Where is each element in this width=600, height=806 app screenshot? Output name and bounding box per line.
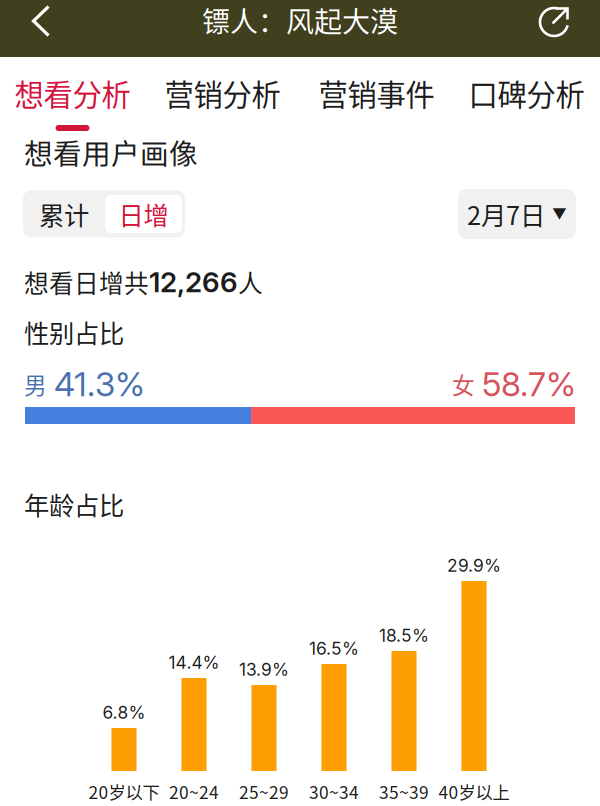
staticText: 20~24 [169,779,219,804]
staticText: 12,266 [149,265,238,299]
staticText: 想看用户画像 [24,131,198,173]
staticText: 想看分析 [14,72,130,114]
staticText: 2月7日 [467,196,545,232]
staticText: 16.5% [309,638,359,659]
staticText: 30~34 [309,779,359,804]
staticText: ▼ [552,205,567,223]
staticText: 14.4% [168,652,219,673]
staticText: 35~39 [379,779,429,804]
staticText: 镖人：风起大漠 [202,0,398,40]
staticText: 人 [238,264,263,300]
staticText: 25~29 [239,779,289,804]
staticText: 29.9% [447,555,501,576]
button[interactable]: 营销分析 [145,57,300,132]
staticText: 20岁以下 [88,779,159,804]
staticText: 13.9% [239,659,289,680]
button[interactable]: 想看分析 [0,57,145,132]
staticText: 18.5% [379,625,429,646]
staticText: 营销事件 [318,72,434,114]
button[interactable]: 分享 [495,2,600,40]
staticText: 58.7% [482,364,576,404]
button[interactable]: 口碑分析 [453,57,600,132]
staticText: 想看日增共 [24,264,149,300]
button[interactable]: 日增 [105,195,182,233]
button[interactable]: 累计 [23,190,105,237]
staticText: 口碑分析 [468,72,584,114]
staticText: 女 [452,368,475,400]
staticText: 累计 [39,196,89,232]
button[interactable]: 营销事件 [300,57,453,132]
staticText: 性别占比 [24,314,124,350]
staticText: 男 [24,368,47,400]
button[interactable]: 返回 [0,2,100,40]
button[interactable]: 2月7日 [458,189,576,239]
staticText: 年龄占比 [24,486,124,522]
staticText: 41.3% [54,364,145,404]
staticText: 日增 [118,196,168,232]
staticText: 营销分析 [164,72,280,114]
staticText: 6.8% [102,702,145,723]
staticText: 40岁以上 [438,779,509,804]
